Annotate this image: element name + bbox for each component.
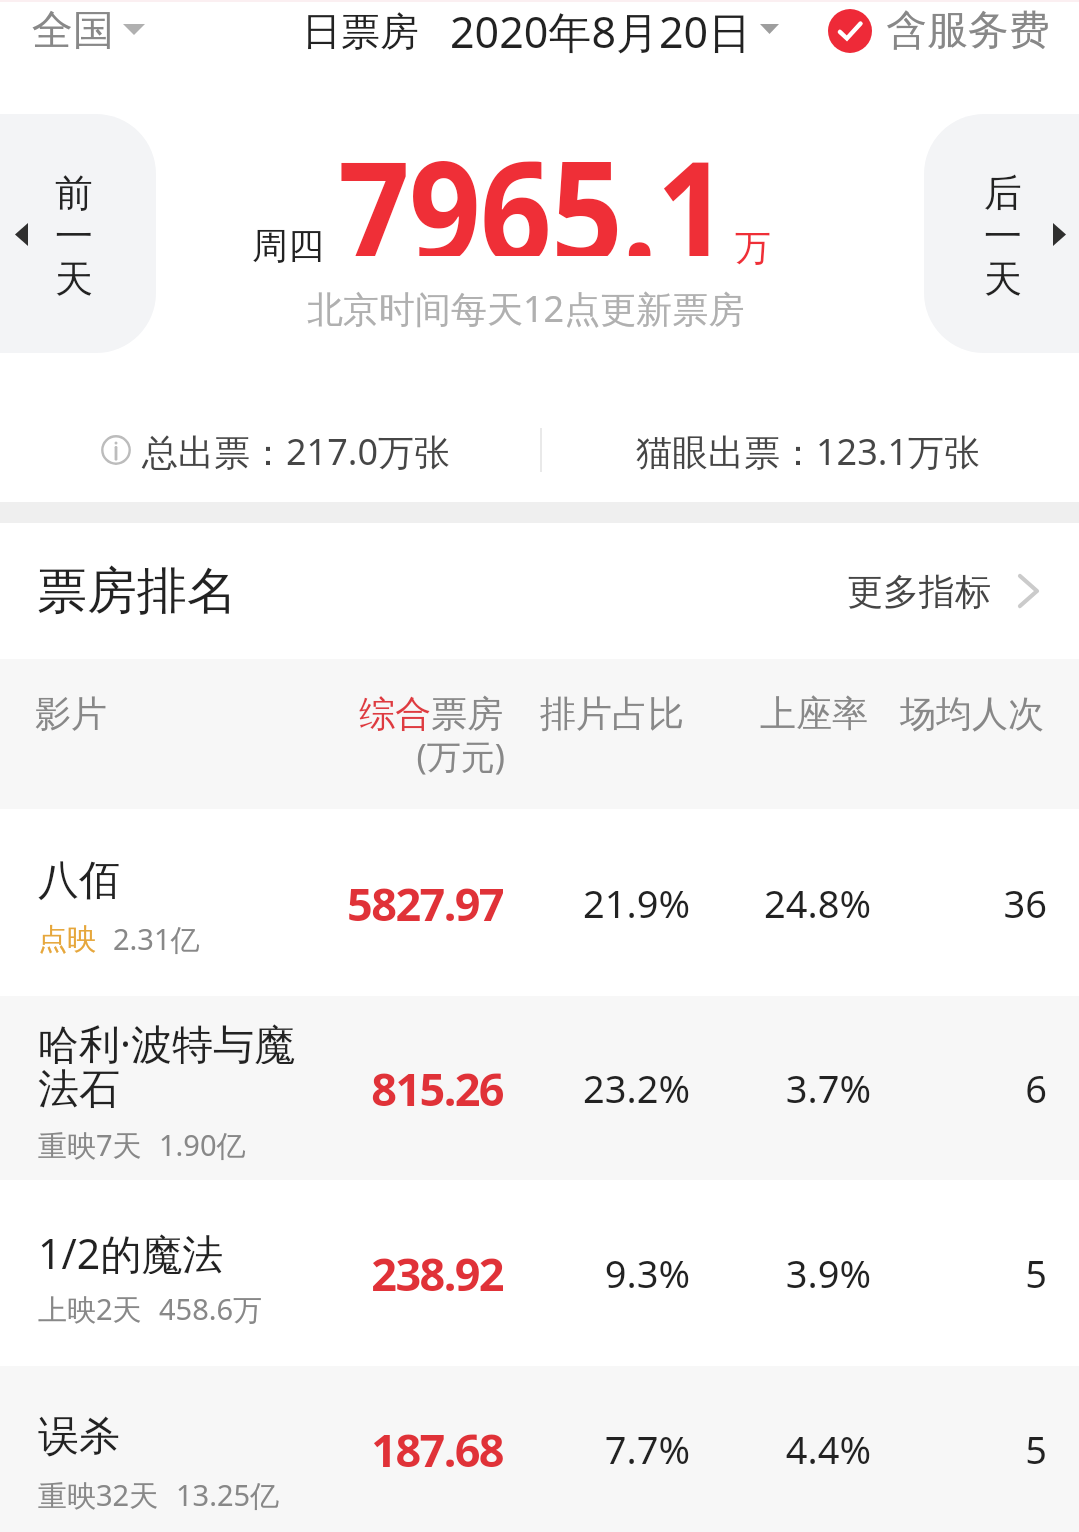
staticText: 票房排名: [37, 560, 237, 623]
button[interactable]: 后: [924, 114, 1079, 353]
staticText: 9.3%: [604, 1247, 690, 1299]
button[interactable]: 后一天: [1043, 208, 1075, 260]
staticText: 天: [55, 255, 93, 298]
staticText: 7965.1: [338, 112, 728, 256]
staticText: 周四: [252, 223, 324, 268]
staticText: 2.31亿: [113, 919, 200, 959]
staticText: 23.2%: [583, 1062, 690, 1114]
staticText: 上座率: [760, 691, 868, 736]
staticText: 哈利·波特与魔: [38, 1015, 295, 1064]
staticText: 猫眼出票：123.1万张: [636, 427, 981, 476]
staticText: 八佰: [38, 855, 120, 904]
button[interactable]: 误杀: [0, 1366, 1079, 1532]
button[interactable]: 前: [0, 114, 156, 353]
staticText: 后: [984, 169, 1022, 212]
staticText: 1/2的魔法: [38, 1225, 224, 1274]
button[interactable]: 含服务费: [828, 0, 1050, 62]
staticText: 4.4%: [785, 1423, 871, 1475]
staticText: 一: [55, 212, 93, 255]
button[interactable]: 哈利·波特与魔: [0, 996, 1079, 1180]
button[interactable]: 日票房: [302, 0, 779, 62]
staticText: (万元): [416, 733, 505, 779]
staticText: 天: [984, 255, 1022, 298]
staticText: 3.9%: [785, 1247, 871, 1299]
staticText: 万: [735, 225, 771, 270]
staticText: 总出票：217.0万张: [142, 427, 451, 476]
staticText: 场均人次: [900, 691, 1044, 736]
button[interactable]: 更多指标: [830, 523, 1039, 659]
button[interactable]: 前一天: [5, 208, 37, 260]
button[interactable]: 全国: [32, 0, 145, 62]
staticText: 日票房: [302, 7, 419, 56]
staticText: 238.92: [371, 1243, 503, 1304]
button[interactable]: 1/2的魔法: [0, 1180, 1079, 1366]
staticText: 5827.97: [347, 873, 503, 934]
staticText: 13.25亿: [176, 1475, 280, 1515]
staticText: 重映32天: [38, 1475, 159, 1515]
staticText: 5: [1025, 1423, 1047, 1475]
staticText: 36: [1003, 877, 1047, 929]
staticText: 上映2天: [38, 1289, 142, 1329]
staticText: 法石: [38, 1064, 120, 1113]
staticText: 北京时间每天12点更新票房: [307, 284, 745, 333]
staticText: 187.68: [371, 1419, 503, 1480]
staticText: 误杀: [38, 1411, 120, 1460]
staticText: 排片占比: [540, 691, 684, 736]
staticText: 前: [55, 169, 93, 212]
staticText: 815.26: [371, 1058, 503, 1119]
staticText: 全国: [32, 5, 114, 57]
staticText: 1.90亿: [159, 1125, 246, 1165]
staticText: 更多指标: [847, 569, 991, 614]
staticText: 3.7%: [785, 1062, 871, 1114]
staticText: 24.8%: [764, 877, 871, 929]
staticText: 5: [1025, 1247, 1047, 1299]
button[interactable]: 八佰: [0, 810, 1079, 996]
staticText: 7.7%: [604, 1423, 690, 1475]
staticText: 21.9%: [583, 877, 690, 929]
staticText: 一: [984, 212, 1022, 255]
staticText: 点映: [38, 921, 96, 958]
staticText: 影片: [35, 691, 107, 736]
staticText: 2020年8月20日: [450, 2, 752, 61]
staticText: 458.6万: [159, 1289, 263, 1329]
staticText: 6: [1025, 1062, 1047, 1114]
staticText: 含服务费: [886, 5, 1050, 57]
staticText: 重映7天: [38, 1125, 142, 1165]
staticText: 综合票房: [359, 691, 503, 736]
